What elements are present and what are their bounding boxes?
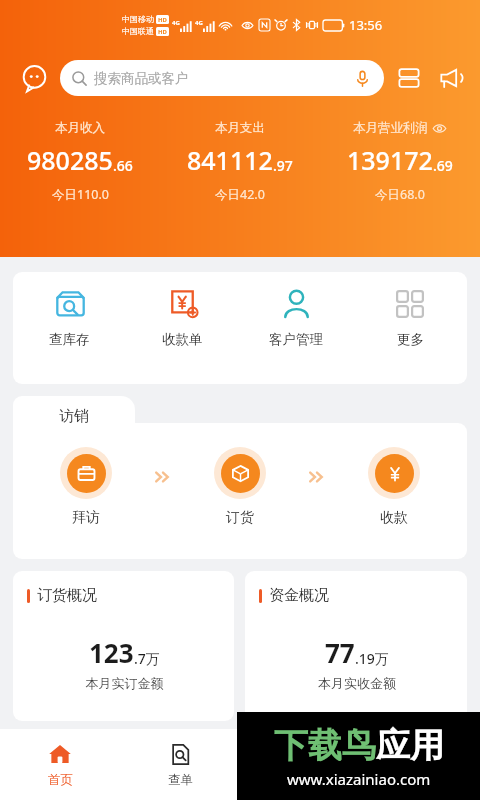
staticText: .66 [113, 156, 133, 175]
staticText: 首页 [48, 772, 73, 788]
staticText: 订货概况 [37, 586, 97, 605]
staticText: .7万 [134, 649, 160, 668]
staticText: 今日68.0 [375, 186, 425, 203]
button[interactable]: 首页 [0, 729, 120, 800]
staticText: HD [158, 16, 167, 24]
staticText: 下载鸟 [274, 724, 376, 767]
button[interactable]: 客户管理 [239, 286, 353, 384]
staticText: 收款 [380, 509, 408, 527]
staticText: .19万 [355, 649, 389, 668]
button[interactable]: Messages [14, 58, 54, 98]
staticText: 123 [89, 635, 134, 670]
button[interactable]: 更多 [353, 286, 467, 384]
staticText: 查库存 [49, 331, 90, 348]
button[interactable]: 资金概况 [245, 571, 467, 721]
staticText: 77 [325, 635, 355, 670]
staticText: 本月支出 [215, 120, 265, 136]
staticText: 13:56 [349, 16, 383, 34]
button[interactable]: 本月营业利润 [320, 120, 480, 203]
button[interactable]: 查单 [120, 729, 240, 800]
staticText: 访销 [59, 407, 89, 426]
staticText: 本月实订金额 [27, 675, 222, 691]
staticText: 本月收入 [55, 120, 105, 136]
staticText: 本月实收金额 [259, 675, 455, 691]
button[interactable]: 本月收入 [0, 120, 160, 203]
staticText: 资金概况 [269, 586, 329, 605]
staticText: HD [158, 28, 167, 36]
staticText: 更多 [397, 331, 424, 348]
staticText: 查单 [168, 772, 193, 788]
staticText: 今日42.0 [215, 186, 265, 203]
staticText: 应用 [376, 724, 444, 767]
button[interactable]: Voice search [352, 68, 372, 88]
staticText: 本月营业利润 [353, 120, 428, 136]
staticText: 今日110.0 [52, 186, 109, 203]
button[interactable]: 订货 [173, 447, 307, 527]
staticText: 客户管理 [269, 331, 323, 348]
button[interactable]: 搜索商品或客户 [60, 60, 384, 96]
staticText: 980285 [27, 143, 113, 177]
staticText: 4G [195, 19, 203, 27]
staticText: 841112 [187, 143, 273, 177]
button[interactable]: 订货概况 [13, 571, 234, 721]
staticText: .69 [433, 156, 453, 175]
button[interactable]: Scan [392, 61, 426, 95]
staticText: 收款单 [162, 331, 203, 348]
staticText: .97 [273, 156, 293, 175]
staticText: 139172 [347, 143, 433, 177]
button[interactable]: 本月支出 [160, 120, 320, 203]
button[interactable]: 查库存 [13, 286, 126, 384]
staticText: www.xiazainiao.com [287, 769, 431, 789]
staticText: 搜索商品或客户 [94, 70, 189, 87]
button[interactable]: 收款 [327, 447, 461, 527]
button[interactable]: Announcements [432, 61, 466, 95]
staticText: 订货 [226, 509, 254, 527]
button[interactable]: 拜访 [19, 447, 153, 527]
button[interactable]: 收款单 [126, 286, 239, 384]
staticText: 拜访 [72, 509, 100, 527]
staticText: 中国联通 [122, 26, 154, 36]
staticText: 4G [172, 19, 180, 27]
staticText: 中国移动 [122, 14, 154, 24]
